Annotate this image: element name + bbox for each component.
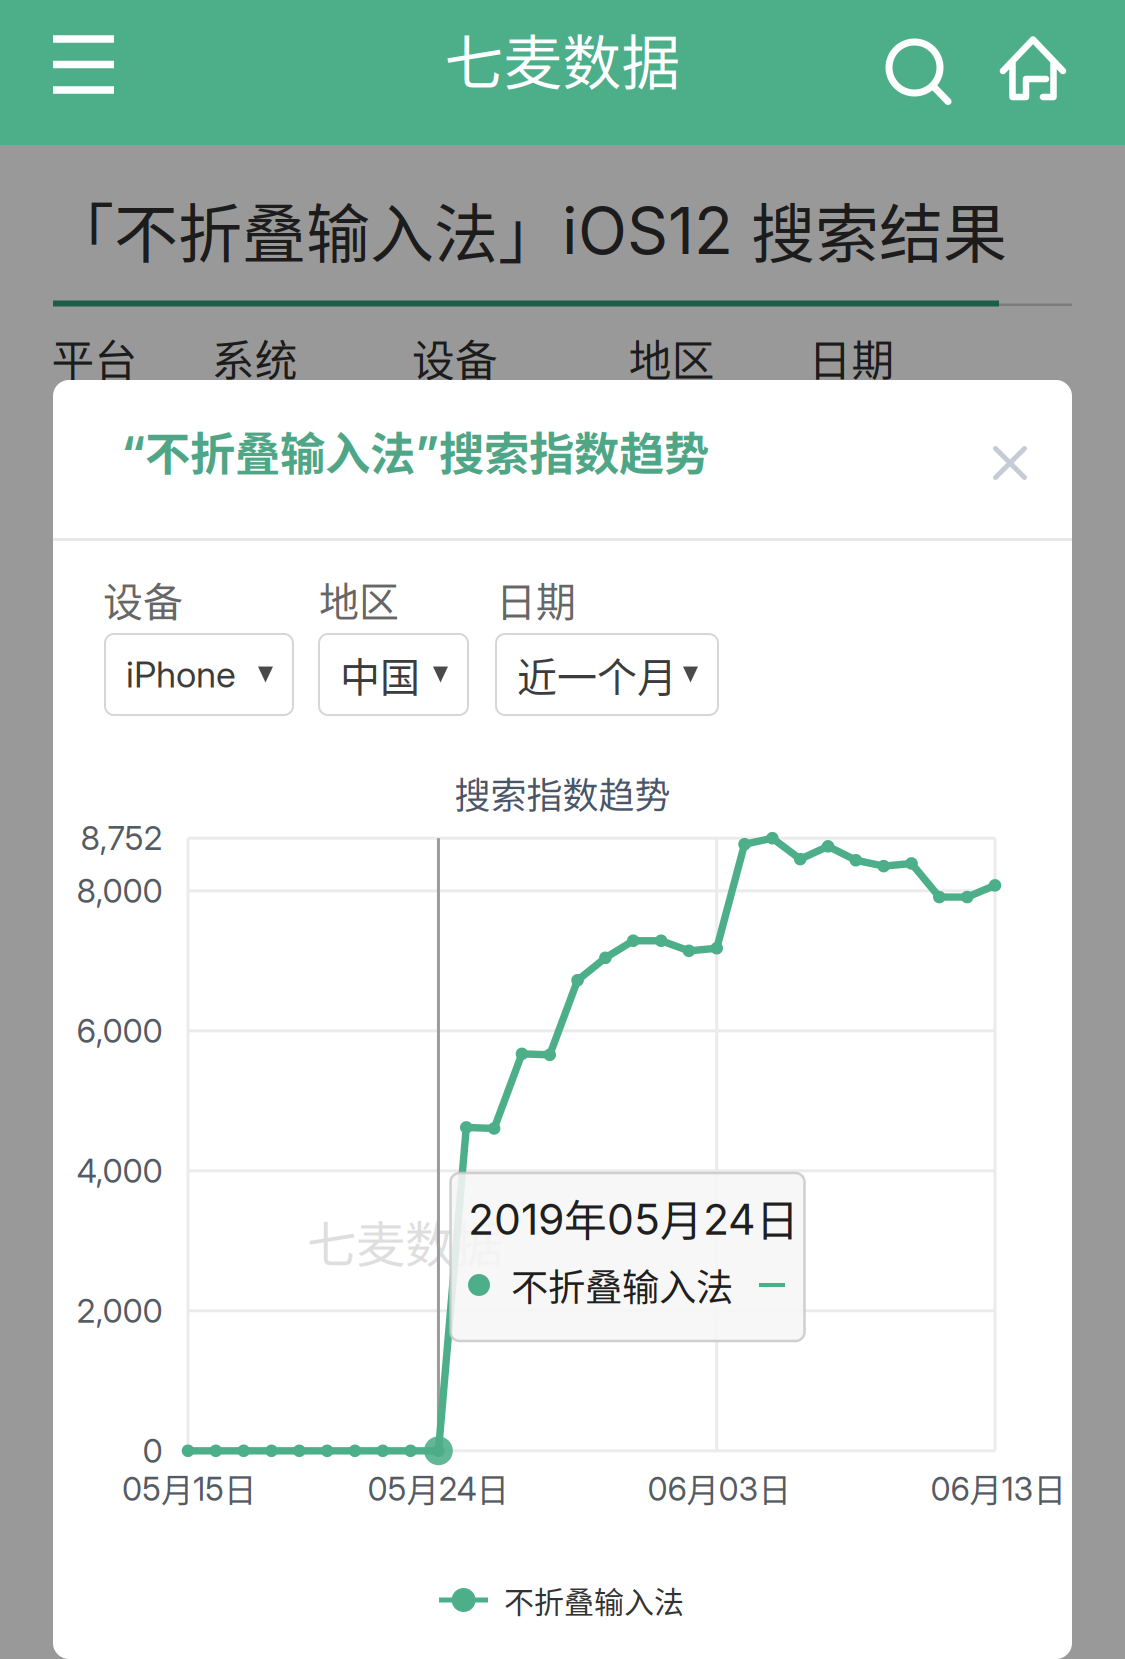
staticText: 地区: [629, 327, 715, 389]
staticText: 搜索指数趋势: [454, 767, 670, 819]
staticText: 七麦数据: [307, 1205, 503, 1277]
staticText: 「不折叠输入法」iOS12 搜索结果: [50, 183, 1007, 275]
staticText: 平台: [51, 327, 137, 389]
staticText: 不折叠输入法: [511, 1258, 733, 1312]
button[interactable]: iPhone: [105, 634, 293, 715]
staticText: 日期: [809, 327, 895, 389]
staticText: “不折叠输入法”搜索指数趋势: [121, 418, 709, 484]
staticText: 4,000: [76, 1151, 162, 1191]
staticText: 七麦数据: [444, 16, 680, 101]
staticText: 8,000: [76, 871, 162, 911]
staticText: 日期: [496, 570, 576, 628]
staticText: 8,752: [80, 818, 162, 858]
staticText: 0: [142, 1431, 162, 1470]
button[interactable]: 近一个月: [496, 634, 718, 715]
button[interactable]: Close: [953, 406, 1067, 520]
staticText: 地区: [319, 570, 399, 628]
staticText: 06月13日: [930, 1464, 1065, 1511]
staticText: 2019年05月24日: [468, 1187, 799, 1249]
button[interactable]: 中国: [319, 634, 468, 715]
staticText: 6,000: [76, 1011, 162, 1051]
staticText: 中国: [340, 645, 420, 703]
staticText: 设备: [103, 570, 183, 628]
staticText: 2,000: [76, 1291, 162, 1330]
staticText: 05月24日: [367, 1464, 508, 1511]
staticText: 06月03日: [647, 1464, 790, 1511]
staticText: 系统: [212, 327, 298, 389]
staticText: iPhone: [126, 653, 236, 696]
staticText: 05月15日: [122, 1464, 256, 1511]
button[interactable]: Search: [863, 13, 975, 131]
staticText: 近一个月: [517, 645, 677, 703]
button[interactable]: Home: [977, 10, 1089, 128]
button[interactable]: Menu: [20, 0, 147, 129]
staticText: 不折叠输入法: [504, 1578, 684, 1622]
staticText: 设备: [412, 327, 498, 389]
